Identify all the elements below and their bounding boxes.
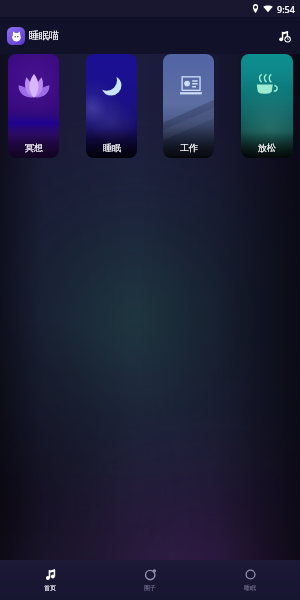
staticText: 冥想 (25, 142, 43, 153)
button[interactable]: Sleep timer (274, 26, 294, 46)
button[interactable]: 睡眠 (200, 560, 300, 600)
staticText: 放松 (258, 142, 276, 153)
staticText: 睡眠喵 (29, 29, 59, 42)
button[interactable]: 放松 (241, 54, 293, 158)
button[interactable]: 工作 (163, 54, 214, 158)
staticText: 圈子 (144, 584, 156, 592)
button[interactable]: 睡眠 (86, 54, 137, 158)
staticText: 工作 (180, 142, 198, 153)
staticText: 睡眠 (103, 142, 121, 153)
button[interactable]: 圈子 (100, 560, 200, 600)
staticText: 睡眠 (244, 584, 256, 592)
button[interactable]: App logo (7, 27, 25, 45)
button[interactable]: 首页 (0, 560, 100, 600)
button[interactable]: 冥想 (8, 54, 59, 158)
staticText: 首页 (44, 584, 56, 592)
staticText: 9:54 (277, 3, 295, 15)
